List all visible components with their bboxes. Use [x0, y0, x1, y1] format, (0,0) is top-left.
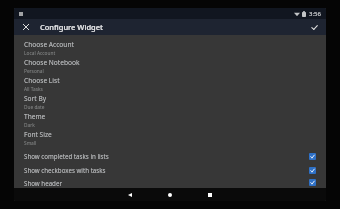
staticText: Dark: [24, 122, 35, 129]
staticText: Show completed tasks in lists: [24, 152, 309, 160]
button[interactable]: Font Size: [14, 129, 326, 147]
staticText: Choose Notebook: [24, 58, 80, 67]
button[interactable]: Show header: [14, 177, 326, 188]
button[interactable]: Home: [150, 188, 190, 201]
staticText: All Tasks: [24, 86, 43, 93]
staticText: Local Account: [24, 50, 56, 57]
staticText: Show checkboxes with tasks: [24, 166, 309, 174]
button[interactable]: Recent apps: [190, 188, 230, 201]
staticText: 3:56: [309, 10, 321, 18]
button[interactable]: Choose List: [14, 75, 326, 93]
staticText: Sort By: [24, 94, 47, 103]
button[interactable]: Choose Notebook: [14, 57, 326, 75]
staticText: Theme: [24, 112, 46, 121]
button[interactable]: Close: [19, 20, 33, 34]
button[interactable]: Choose Account: [14, 39, 326, 57]
button[interactable]: Back: [110, 188, 150, 201]
button[interactable]: Show completed tasks in lists: [14, 149, 326, 163]
staticText: Choose Account: [24, 40, 74, 49]
staticText: Small: [24, 140, 37, 147]
staticText: Show header: [24, 179, 309, 187]
button[interactable]: Confirm: [307, 20, 321, 34]
button[interactable]: Show checkboxes with tasks: [14, 163, 326, 177]
button[interactable]: Theme: [14, 111, 326, 129]
staticText: Configure Widget: [40, 22, 103, 32]
staticText: Choose List: [24, 76, 60, 85]
staticText: Due date: [24, 104, 45, 111]
staticText: Font Size: [24, 130, 52, 139]
staticText: Personal: [24, 68, 44, 75]
button[interactable]: Sort By: [14, 93, 326, 111]
